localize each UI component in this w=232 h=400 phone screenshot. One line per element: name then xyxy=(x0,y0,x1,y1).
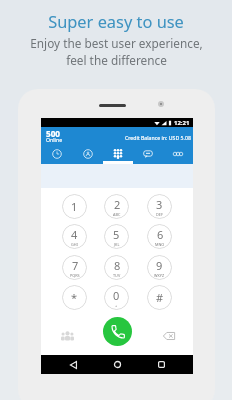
staticText: 5 xyxy=(113,227,120,242)
button[interactable]: Key 1 xyxy=(62,194,87,219)
button[interactable]: Key 3 xyxy=(147,194,172,219)
button[interactable]: Key 4 xyxy=(62,224,87,249)
button[interactable]: Back xyxy=(63,355,83,374)
staticText: JKL xyxy=(114,242,120,247)
button[interactable]: Key 7 xyxy=(62,255,87,280)
staticText: * xyxy=(71,290,78,305)
staticText: Credit Balance in: USD 5.08 xyxy=(125,134,191,141)
staticText: WXYZ xyxy=(154,273,165,278)
staticText: 1 xyxy=(71,199,78,214)
staticText: GHI xyxy=(71,242,78,247)
staticText: Super easy to use xyxy=(48,10,184,32)
button[interactable]: Call xyxy=(103,317,132,346)
button[interactable]: Key # xyxy=(147,285,172,310)
button[interactable]: More xyxy=(163,146,193,164)
button[interactable]: Key 6 xyxy=(147,224,172,249)
staticText: PQRS xyxy=(70,273,80,278)
button[interactable]: Dialpad xyxy=(103,146,133,164)
staticText: + xyxy=(115,303,118,308)
button[interactable]: Recents xyxy=(41,146,72,164)
button[interactable]: Key 9 xyxy=(147,255,172,280)
staticText: Enjoy the best user experience, feel the… xyxy=(30,35,203,68)
button[interactable]: Key 5 xyxy=(104,224,129,249)
staticText: DEF xyxy=(156,212,163,217)
staticText: 2 xyxy=(114,197,121,212)
button[interactable]: Messages xyxy=(133,146,163,164)
staticText: 3 xyxy=(156,197,163,212)
staticText: 0 xyxy=(113,288,120,303)
button[interactable]: Home xyxy=(107,355,127,374)
staticText: 8 xyxy=(114,258,121,273)
button[interactable]: Contacts xyxy=(56,325,78,347)
staticText: 12:21 xyxy=(174,119,190,127)
staticText: 9 xyxy=(156,258,163,273)
staticText: # xyxy=(156,290,164,305)
staticText: MNO xyxy=(155,242,165,247)
button[interactable]: Key 2 xyxy=(104,194,129,219)
button[interactable]: Key 8 xyxy=(104,255,129,280)
staticText: 500 xyxy=(46,128,61,139)
staticText: 7 xyxy=(72,258,79,273)
button[interactable]: Key * xyxy=(62,285,87,310)
staticText: Online xyxy=(46,136,63,143)
button[interactable]: Recents xyxy=(151,355,171,374)
button[interactable]: Contacts xyxy=(72,146,103,164)
button[interactable]: Key 0 xyxy=(104,285,129,310)
staticText: 6 xyxy=(157,227,164,242)
staticText: 4 xyxy=(71,227,78,242)
staticText: TUV xyxy=(113,273,121,278)
button[interactable]: Backspace xyxy=(158,325,180,347)
staticText: ABC xyxy=(113,212,121,217)
